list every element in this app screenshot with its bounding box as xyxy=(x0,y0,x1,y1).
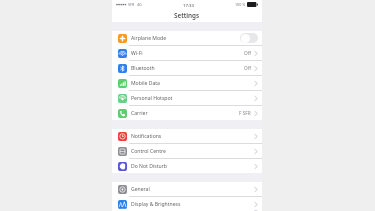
staticText: Display & Brightness xyxy=(131,201,181,208)
staticText: 17:33 xyxy=(183,2,194,8)
button[interactable]: Carrier xyxy=(112,106,262,120)
button[interactable]: Personal Hotspot xyxy=(112,91,262,105)
button[interactable]: Mobile Data xyxy=(112,76,262,90)
button[interactable]: Airplane Mode xyxy=(112,31,262,45)
button[interactable]: Airplane Mode toggle xyxy=(240,33,258,43)
staticText: Do Not Disturb xyxy=(131,163,167,170)
staticText: Bluetooth xyxy=(131,65,155,72)
staticText: Mobile Data xyxy=(131,80,160,87)
button[interactable]: Bluetooth xyxy=(112,61,262,75)
button[interactable]: Notifications xyxy=(112,129,262,143)
staticText: Wi-Fi xyxy=(131,50,143,57)
staticText: Carrier xyxy=(131,110,148,117)
staticText: SFR xyxy=(128,2,135,7)
button[interactable]: Display & Brightness xyxy=(112,197,262,211)
staticText: Notifications xyxy=(131,133,162,140)
button[interactable]: Control Centre xyxy=(112,144,262,158)
staticText: Airplane Mode xyxy=(131,35,167,42)
button[interactable]: General xyxy=(112,182,262,196)
staticText: Personal Hotspot xyxy=(131,95,173,102)
button[interactable]: Wi-Fi xyxy=(112,46,262,60)
staticText: F SFR xyxy=(239,110,251,116)
button[interactable]: Do Not Disturb xyxy=(112,159,262,173)
staticText: Control Centre xyxy=(131,148,166,155)
staticText: Off xyxy=(244,50,251,56)
staticText: Off xyxy=(244,65,251,71)
staticText: General xyxy=(131,186,150,193)
staticText: Settings xyxy=(174,11,200,20)
staticText: 4G xyxy=(137,2,142,7)
staticText: 100 % xyxy=(235,2,246,7)
